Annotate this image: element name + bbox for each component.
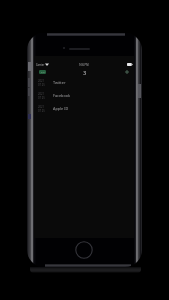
- staticText: Facebook: [53, 93, 71, 98]
- staticText: 2021: [38, 79, 45, 83]
- button[interactable]: 2021: [34, 89, 134, 102]
- staticText: 3: [83, 69, 87, 77]
- button[interactable]: Add: [122, 67, 132, 77]
- button[interactable]: 2021: [34, 102, 134, 115]
- staticText: 07 25: [38, 109, 45, 113]
- staticText: 07 25: [38, 96, 45, 100]
- staticText: Edit: [41, 71, 45, 74]
- button[interactable]: Edit: [39, 70, 46, 74]
- button[interactable]: 2021: [34, 76, 134, 89]
- staticText: 2021: [38, 105, 45, 109]
- staticText: Apple ID: [53, 106, 69, 111]
- staticText: 07 25: [38, 83, 45, 87]
- staticText: Twitter: [53, 80, 66, 85]
- staticText: Carrier: [36, 63, 45, 66]
- staticText: 9:36 PM: [79, 63, 89, 66]
- staticText: 2021: [38, 92, 45, 96]
